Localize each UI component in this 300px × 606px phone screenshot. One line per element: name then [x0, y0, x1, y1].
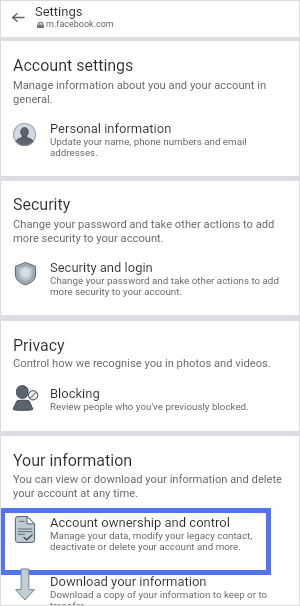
staticText: Settings [35, 4, 83, 19]
staticText: Account ownership and control [50, 515, 230, 530]
staticText: Download a copy of your information to k… [50, 589, 288, 606]
staticText: m.facebook.com [46, 19, 114, 30]
staticText: Control how we recognise you in photos a… [13, 357, 289, 370]
staticText: Security [13, 195, 71, 214]
staticText: You can view or download your informatio… [13, 473, 289, 499]
staticText: Your information [13, 451, 133, 470]
staticText: Change your password and take other acti… [50, 275, 288, 297]
staticText: Privacy [13, 336, 65, 355]
staticText: Review people who you've previously bloc… [50, 401, 249, 412]
staticText: Personal information [50, 121, 172, 136]
staticText: Manage your data, modify your legacy con… [50, 530, 288, 552]
staticText: Change your password and take other acti… [13, 218, 289, 244]
staticText: Security and login [50, 260, 153, 275]
staticText: Update your name, phone numbers and emai… [50, 136, 288, 158]
button[interactable] [0, 508, 271, 575]
staticText: Download your information [50, 574, 207, 589]
staticText: Manage information about you and your ac… [13, 79, 289, 105]
button[interactable]: Back [6, 5, 30, 29]
staticText: Blocking [50, 386, 100, 401]
staticText: Account settings [13, 56, 134, 75]
